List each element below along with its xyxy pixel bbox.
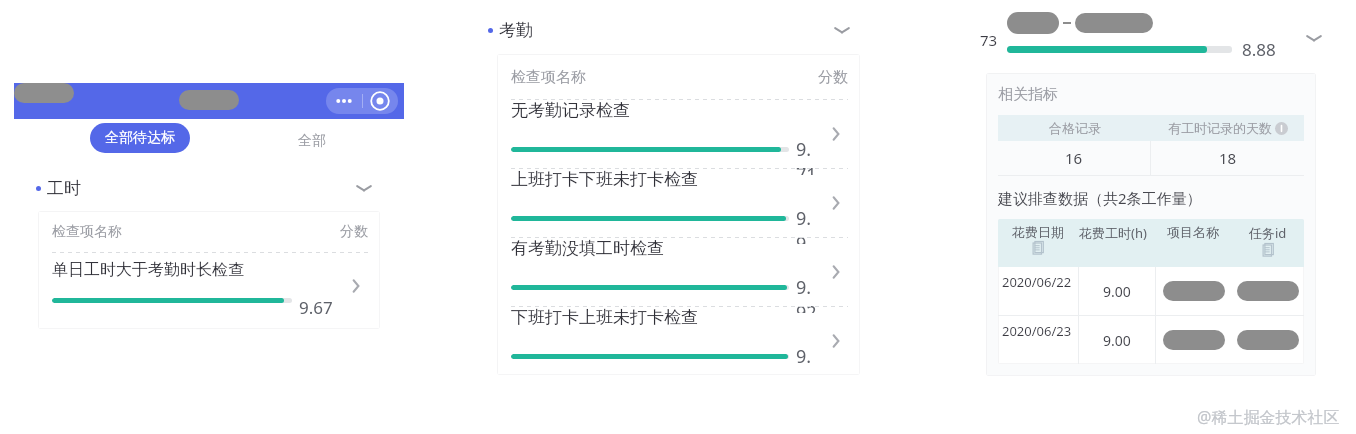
- button[interactable]: 单日工时大于考勤时长检查: [52, 257, 368, 315]
- button[interactable]: 考勤: [488, 18, 870, 42]
- button[interactable]: 无考勤记录检查: [511, 100, 848, 168]
- staticText: 检查项名称: [52, 223, 122, 241]
- staticText: 全部待达标: [105, 129, 175, 147]
- staticText: 下班打卡上班未打卡检查: [511, 307, 698, 328]
- staticText: 工时: [47, 178, 81, 199]
- staticText: 分数: [818, 68, 848, 87]
- button[interactable]: 全部: [292, 126, 332, 156]
- staticText: 考勤: [499, 20, 533, 41]
- staticText: 分数: [340, 223, 368, 241]
- button[interactable]: 73: [980, 12, 1326, 61]
- button[interactable]: 有考勤没填工时检查: [511, 238, 848, 306]
- staticText: 9.00: [1103, 331, 1131, 350]
- staticText: 16: [1065, 148, 1083, 168]
- button[interactable]: 2020/06/22: [998, 267, 1304, 315]
- staticText: 花费日期: [1012, 224, 1064, 240]
- button[interactable]: 上班打卡下班未打卡检查: [511, 169, 848, 237]
- other: 收起: [1302, 26, 1326, 50]
- button[interactable]: 工时: [14, 176, 404, 200]
- staticText: 花费工时(h): [1079, 224, 1147, 242]
- staticText: 8.88: [1242, 38, 1276, 61]
- staticText: 单日工时大于考勤时长检查: [52, 260, 244, 280]
- staticText: @稀土掘金技术社区: [1197, 406, 1340, 428]
- staticText: 建议排查数据（共2条工作量）: [998, 188, 1202, 208]
- staticText: 相关指标: [998, 85, 1058, 104]
- staticText: 9.9: [796, 206, 820, 244]
- staticText: 9.96: [796, 344, 820, 375]
- staticText: 任务id: [1249, 224, 1287, 242]
- other: 查看详情: [344, 274, 368, 298]
- staticText: 无考勤记录检查: [511, 100, 630, 121]
- other: 查看详情: [824, 191, 848, 215]
- staticText: 上班打卡下班未打卡检查: [511, 169, 698, 190]
- other: 查看详情: [824, 260, 848, 284]
- staticText: 9.92: [796, 275, 820, 313]
- staticText: 2020/06/22: [1002, 273, 1072, 291]
- other: 查看详情: [824, 329, 848, 353]
- button[interactable]: 全部待达标: [90, 123, 190, 153]
- button[interactable]: 2020/06/23: [998, 316, 1304, 364]
- button[interactable]: 更多: [326, 88, 398, 114]
- button[interactable]: 下班打卡上班未打卡检查: [511, 307, 848, 375]
- staticText: 有考勤没填工时检查: [511, 238, 664, 259]
- staticText: 2020/06/23: [1002, 322, 1072, 340]
- other: 收起: [830, 18, 854, 42]
- staticText: 项目名称: [1167, 224, 1219, 240]
- staticText: 9.67: [299, 296, 333, 319]
- other: 查看详情: [824, 122, 848, 146]
- staticText: 合格记录: [1049, 120, 1101, 136]
- staticText: 18: [1219, 148, 1237, 168]
- staticText: 有工时记录的天数: [1168, 120, 1272, 136]
- staticText: 9.00: [1103, 282, 1131, 301]
- staticText: 9.71: [796, 137, 820, 175]
- staticText: 检查项名称: [511, 68, 586, 87]
- staticText: 73: [980, 30, 998, 50]
- other: 收起: [352, 176, 376, 200]
- staticText: 全部: [298, 132, 326, 150]
